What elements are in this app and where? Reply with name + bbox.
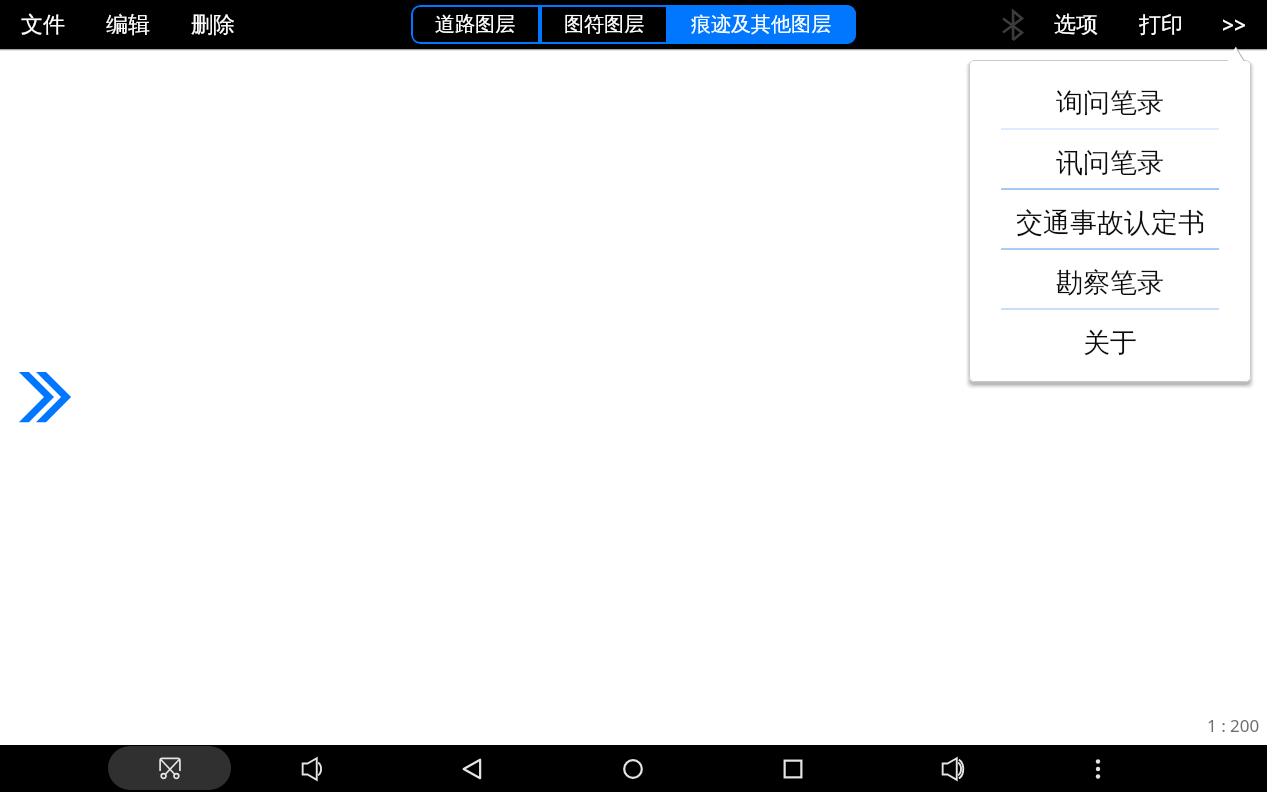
staticText: 打印 [1139,11,1183,39]
button[interactable]: Screenshot [108,746,231,790]
button[interactable]: 道路图层 [411,5,538,44]
staticText: 勘察笔录 [1056,266,1164,300]
button[interactable]: Volume up [930,746,976,791]
staticText: 询问笔录 [1056,86,1164,120]
staticText: 1 : 200 [1207,714,1260,737]
button[interactable]: 打印 [1130,0,1192,49]
staticText: 关于 [1083,326,1137,360]
staticText: 选项 [1054,11,1098,39]
button[interactable]: 痕迹及其他图层 [666,5,856,44]
button[interactable]: 询问笔录 [969,70,1251,130]
button[interactable]: 选项 [1045,0,1107,49]
button[interactable]: 删除 [190,0,235,49]
button[interactable]: Bluetooth [992,0,1032,49]
staticText: 痕迹及其他图层 [691,12,831,37]
staticText: >> [1222,11,1247,40]
button[interactable]: More options [1075,746,1121,791]
button[interactable]: 编辑 [105,0,150,49]
button[interactable]: 文件 [20,0,65,49]
staticText: 交通事故认定书 [1016,206,1205,240]
button[interactable]: Recents [770,746,816,791]
staticText: 道路图层 [435,12,515,37]
button[interactable]: 关于 [969,310,1251,370]
button[interactable]: 交通事故认定书 [969,190,1251,250]
staticText: 删除 [191,11,235,39]
button[interactable]: Back [449,746,495,791]
button[interactable]: More [1211,0,1262,49]
button[interactable]: Volume down [290,746,336,791]
button[interactable]: Expand toolbar [14,369,78,429]
staticText: 图符图层 [564,12,644,37]
staticText: 讯问笔录 [1056,146,1164,180]
button[interactable]: Home [610,746,656,791]
button[interactable]: 讯问笔录 [969,130,1251,190]
staticText: 编辑 [106,11,150,39]
button[interactable]: 勘察笔录 [969,250,1251,310]
staticText: 文件 [21,11,65,39]
button[interactable]: 图符图层 [542,5,666,44]
